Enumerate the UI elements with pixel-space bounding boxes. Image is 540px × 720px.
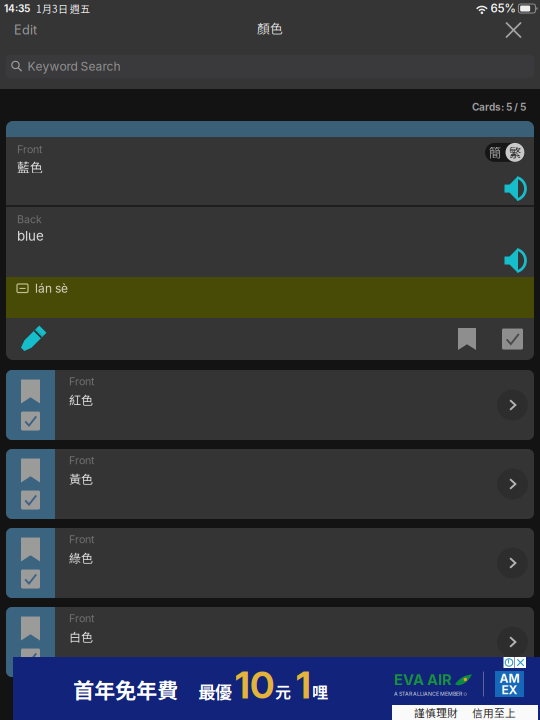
staticText: Front bbox=[69, 375, 94, 388]
staticText: Front bbox=[69, 612, 94, 625]
staticText: 信用至上 bbox=[472, 705, 516, 720]
staticText: 最優 bbox=[198, 678, 232, 704]
staticText: 白色 bbox=[69, 628, 93, 645]
staticText: blue bbox=[17, 228, 44, 244]
staticText: Keyword Search bbox=[27, 59, 120, 74]
button[interactable]: Advertisement bbox=[13, 657, 540, 720]
staticText: 顏色 bbox=[257, 19, 283, 37]
staticText: Front bbox=[69, 454, 94, 467]
staticText: Cards: 5 / 5 bbox=[472, 101, 526, 113]
staticText: 黃色 bbox=[69, 470, 93, 487]
button[interactable]: Bookmark bbox=[449, 318, 485, 360]
staticText: 哩 bbox=[312, 680, 328, 703]
staticText: EX bbox=[501, 682, 517, 697]
staticText: 紅色 bbox=[69, 391, 93, 408]
button[interactable]: Front bbox=[6, 528, 534, 598]
staticText: EVA AIR bbox=[394, 671, 452, 689]
staticText: 綠色 bbox=[69, 549, 93, 566]
staticText: 65% bbox=[490, 2, 515, 15]
staticText: Back bbox=[17, 213, 42, 226]
staticText: 10 bbox=[235, 662, 274, 708]
staticText: Front bbox=[69, 533, 94, 546]
button[interactable]: Edit card bbox=[6, 318, 57, 360]
staticText: Front bbox=[17, 143, 42, 156]
button[interactable]: Close bbox=[492, 17, 540, 43]
staticText: 1 bbox=[296, 662, 311, 708]
button[interactable]: Toggle Simplified or Traditional bbox=[485, 143, 525, 162]
button[interactable]: Front bbox=[6, 607, 534, 677]
staticText: 首年免年費 bbox=[73, 674, 178, 705]
staticText: Edit bbox=[14, 22, 37, 38]
staticText: A STAR ALLIANCE MEMBER ✩ bbox=[394, 691, 467, 697]
staticText: 繁 bbox=[509, 144, 521, 161]
button[interactable]: Mark as learned bbox=[493, 318, 534, 360]
button[interactable]: Front bbox=[6, 449, 534, 519]
button[interactable]: Play Front audio bbox=[504, 176, 534, 201]
staticText: AM bbox=[499, 671, 519, 685]
button[interactable]: Play Back audio bbox=[504, 248, 534, 273]
button[interactable]: Front bbox=[6, 370, 534, 440]
staticText: 1月3日 週五 bbox=[36, 1, 90, 16]
staticText: 簡 bbox=[489, 144, 501, 161]
button[interactable]: Edit bbox=[0, 17, 51, 43]
staticText: lán sè bbox=[35, 281, 68, 295]
button[interactable]: Keyword Search bbox=[5, 55, 534, 78]
staticText: 元 bbox=[275, 680, 291, 703]
staticText: 藍色 bbox=[17, 158, 43, 176]
staticText: 14:35 bbox=[4, 2, 30, 15]
staticText: 謹慎理財 bbox=[414, 705, 458, 720]
